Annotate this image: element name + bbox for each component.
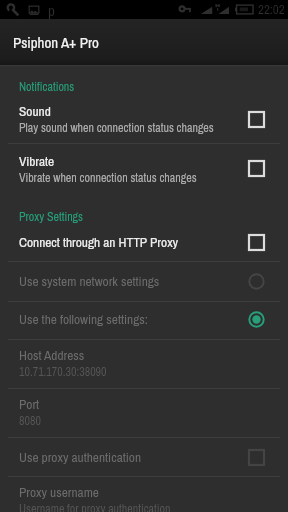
staticText: Use proxy authentication [19, 448, 142, 466]
button[interactable]: Sound [0, 102, 288, 136]
staticText: Notifications [19, 79, 75, 95]
staticText: Sound [19, 102, 51, 120]
button[interactable]: Host Address [0, 346, 288, 380]
staticText: Use system network settings [19, 272, 160, 290]
staticText: 8080 [19, 413, 41, 429]
button[interactable]: Radio button [242, 305, 270, 333]
button[interactable]: Vibrate [0, 152, 288, 186]
staticText: Port [19, 395, 40, 413]
button[interactable]: Radio button [242, 267, 270, 295]
staticText: Connect through an HTTP Proxy [19, 233, 179, 251]
button[interactable]: Use system network settings [0, 272, 288, 290]
button[interactable]: Use the following settings: [0, 310, 288, 328]
button[interactable]: Checkbox [242, 443, 270, 471]
staticText: Vibrate when connection status changes [19, 170, 197, 186]
button[interactable]: Use proxy authentication [0, 448, 288, 466]
staticText: 10.71.170.30:38090 [19, 364, 107, 380]
staticText: Proxy username [19, 483, 99, 501]
button[interactable]: Checkbox [242, 105, 270, 133]
staticText: Use the following settings: [19, 310, 148, 328]
staticText: Psiphon A+ Pro [13, 32, 99, 52]
button[interactable]: Proxy username [0, 483, 288, 512]
staticText: 22:02 [258, 1, 285, 19]
staticText: p [48, 0, 55, 19]
staticText: Username for proxy authentication [19, 501, 171, 512]
staticText: Play sound when connection status change… [19, 120, 214, 136]
button[interactable]: Checkbox [242, 228, 270, 256]
staticText: Proxy Settings [19, 209, 83, 225]
staticText: Host Address [19, 346, 85, 364]
button[interactable]: Checkbox [242, 154, 270, 182]
button[interactable]: Port [0, 395, 288, 429]
staticText: Vibrate [19, 152, 55, 170]
button[interactable]: Connect through an HTTP Proxy [0, 233, 288, 251]
